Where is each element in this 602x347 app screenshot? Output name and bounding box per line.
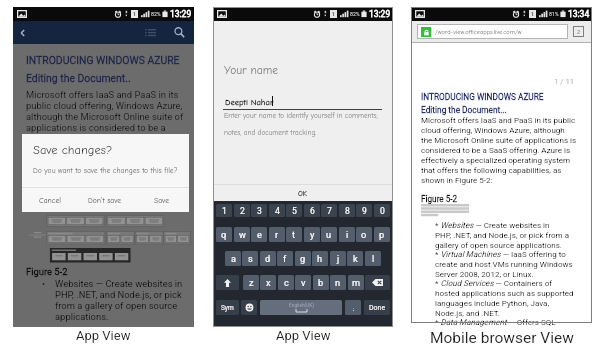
staticText: Save changes? bbox=[33, 143, 113, 157]
staticText: Mobile browser View bbox=[430, 329, 574, 347]
staticText: • bbox=[42, 278, 46, 289]
staticText: 5 bbox=[292, 206, 297, 216]
button[interactable]: y bbox=[304, 227, 320, 242]
staticText: 13:29 bbox=[170, 9, 192, 19]
staticText: Do you want to save the changes to this … bbox=[33, 166, 178, 175]
staticText: * Virtual Machines — IaaS offering to cr… bbox=[435, 250, 574, 279]
staticText: Sym bbox=[221, 304, 234, 312]
button[interactable]: Back bbox=[13, 23, 33, 43]
button[interactable]: w bbox=[234, 227, 250, 242]
button[interactable]: 8 bbox=[339, 204, 355, 217]
button[interactable]: e bbox=[251, 227, 267, 242]
button[interactable]: Space bbox=[260, 300, 342, 315]
button[interactable]: r bbox=[269, 227, 285, 242]
button[interactable]: , bbox=[345, 300, 361, 315]
staticText: Enter your name to identify yourself in … bbox=[224, 112, 389, 137]
staticText: 3 bbox=[257, 206, 262, 216]
staticText: App View bbox=[276, 328, 331, 343]
button[interactable]: x bbox=[260, 275, 276, 290]
staticText: Deepti Nahar bbox=[225, 97, 274, 107]
staticText: 0 bbox=[380, 206, 385, 216]
staticText: * Websites — Create websites in PHP, .NE… bbox=[435, 221, 574, 250]
staticText: w bbox=[239, 229, 246, 240]
staticText: Editing the Document... bbox=[421, 105, 507, 115]
staticText: o bbox=[361, 229, 367, 240]
button[interactable]: f bbox=[277, 251, 293, 266]
button[interactable]: Done bbox=[364, 300, 390, 315]
staticText: q bbox=[221, 229, 227, 240]
staticText: m bbox=[352, 277, 361, 288]
staticText: Websites — Create websites in PHP, .NET,… bbox=[55, 278, 187, 322]
button[interactable]: t bbox=[286, 227, 302, 242]
staticText: p bbox=[379, 229, 385, 240]
button[interactable]: o bbox=[356, 227, 372, 242]
button[interactable]: c bbox=[278, 275, 294, 290]
staticText: OK bbox=[298, 189, 308, 198]
button[interactable]: Search bbox=[171, 24, 187, 40]
button[interactable]: d bbox=[260, 251, 276, 266]
staticText: Save bbox=[154, 196, 169, 205]
button[interactable]: l bbox=[365, 251, 381, 266]
button[interactable]: m bbox=[348, 275, 364, 290]
button[interactable]: g bbox=[295, 251, 311, 266]
button[interactable]: 1 bbox=[216, 204, 232, 217]
button[interactable]: q bbox=[216, 227, 232, 242]
staticText: y bbox=[310, 229, 315, 240]
button[interactable]: b bbox=[313, 275, 329, 290]
button[interactable]: 6 bbox=[304, 204, 320, 217]
button[interactable]: 3 bbox=[251, 204, 267, 217]
button[interactable]: Tabs bbox=[573, 26, 584, 37]
staticText: z bbox=[249, 277, 254, 288]
button[interactable]: i bbox=[339, 227, 355, 242]
staticText: 7 bbox=[327, 206, 332, 216]
staticText: 6 bbox=[310, 206, 315, 216]
button[interactable]: Save bbox=[133, 188, 189, 212]
button[interactable]: k bbox=[347, 251, 363, 266]
staticText: b bbox=[318, 277, 324, 288]
staticText: Cancel bbox=[39, 196, 61, 205]
staticText: Don't save bbox=[88, 196, 122, 205]
button[interactable]: OK bbox=[213, 185, 393, 201]
staticText: f bbox=[283, 253, 287, 264]
button[interactable]: Don't save bbox=[77, 188, 133, 212]
staticText: INTRODUCING WINDOWS AZURE bbox=[421, 92, 544, 102]
button[interactable]: s bbox=[242, 251, 258, 266]
staticText: t bbox=[292, 229, 296, 240]
button[interactable]: 9 bbox=[356, 204, 372, 217]
button[interactable]: p bbox=[374, 227, 390, 242]
button[interactable]: Sym bbox=[216, 300, 239, 315]
button[interactable]: n bbox=[330, 275, 346, 290]
staticText: s bbox=[248, 253, 253, 264]
button[interactable]: a bbox=[225, 251, 241, 266]
button[interactable]: 2 bbox=[234, 204, 250, 217]
button[interactable]: /word-view.officeapps.live.com/w bbox=[417, 24, 568, 39]
button[interactable]: Backspace bbox=[365, 275, 390, 290]
button[interactable]: Shift bbox=[216, 275, 239, 290]
button[interactable]: Emoji bbox=[241, 300, 257, 315]
button[interactable]: u bbox=[321, 227, 337, 242]
staticText: 1 bbox=[222, 206, 227, 216]
staticText: 1 bbox=[332, 11, 336, 17]
button[interactable]: 0 bbox=[374, 204, 390, 217]
staticText: e bbox=[257, 229, 262, 240]
staticText: j bbox=[337, 253, 340, 264]
button[interactable]: h bbox=[312, 251, 328, 266]
staticText: Microsoft offers IaaS and PaaS in its pu… bbox=[421, 116, 578, 185]
staticText: INTRODUCING WINDOWS AZURE bbox=[26, 54, 180, 66]
staticText: r bbox=[275, 229, 279, 240]
button[interactable]: v bbox=[295, 275, 311, 290]
button[interactable]: Cancel bbox=[22, 188, 77, 212]
button[interactable]: List view bbox=[143, 25, 157, 39]
staticText: 2 bbox=[577, 28, 581, 35]
staticText: * Cloud Services — Containers of hosted … bbox=[435, 279, 574, 318]
button[interactable]: 4 bbox=[269, 204, 285, 217]
button[interactable]: j bbox=[330, 251, 346, 266]
button[interactable]: z bbox=[243, 275, 259, 290]
staticText: a bbox=[231, 253, 236, 264]
staticText: Figure 5-2 bbox=[421, 194, 458, 204]
staticText: d bbox=[265, 253, 271, 264]
staticText: c bbox=[284, 277, 289, 288]
button[interactable]: 7 bbox=[321, 204, 337, 217]
staticText: Your name bbox=[224, 64, 279, 77]
button[interactable]: 5 bbox=[286, 204, 302, 217]
